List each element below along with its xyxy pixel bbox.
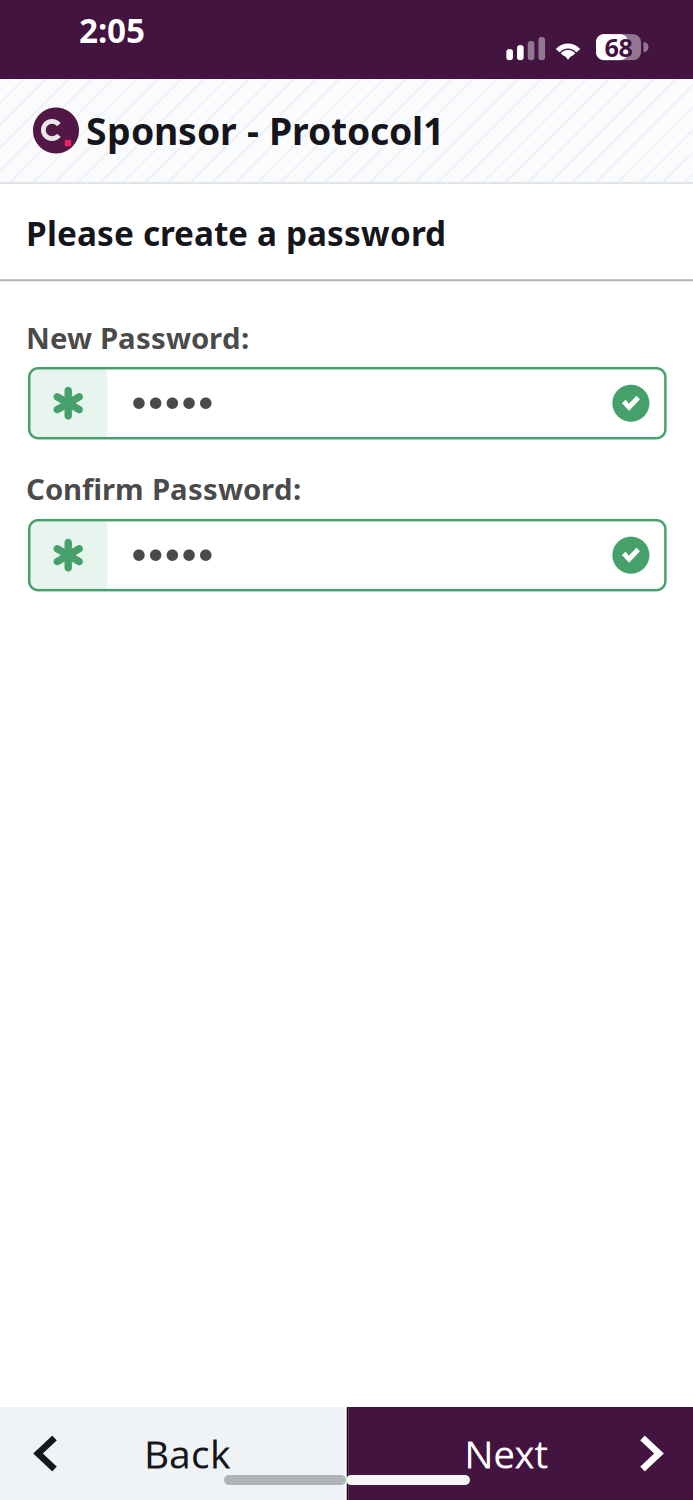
staticText: Confirm Password: — [26, 469, 301, 508]
button[interactable]: Next — [348, 1407, 693, 1500]
button[interactable] — [29, 368, 665, 438]
button[interactable]: Back — [0, 1407, 345, 1500]
staticText: New Password: — [26, 318, 249, 357]
staticText: Sponsor - Protocol1 — [86, 106, 444, 155]
staticText: Please create a password — [26, 211, 446, 255]
button[interactable] — [29, 520, 665, 590]
staticText: Next — [464, 1428, 548, 1479]
staticText: 68 — [604, 30, 632, 64]
staticText: 2:05 — [79, 8, 145, 52]
staticText: Back — [144, 1428, 231, 1479]
